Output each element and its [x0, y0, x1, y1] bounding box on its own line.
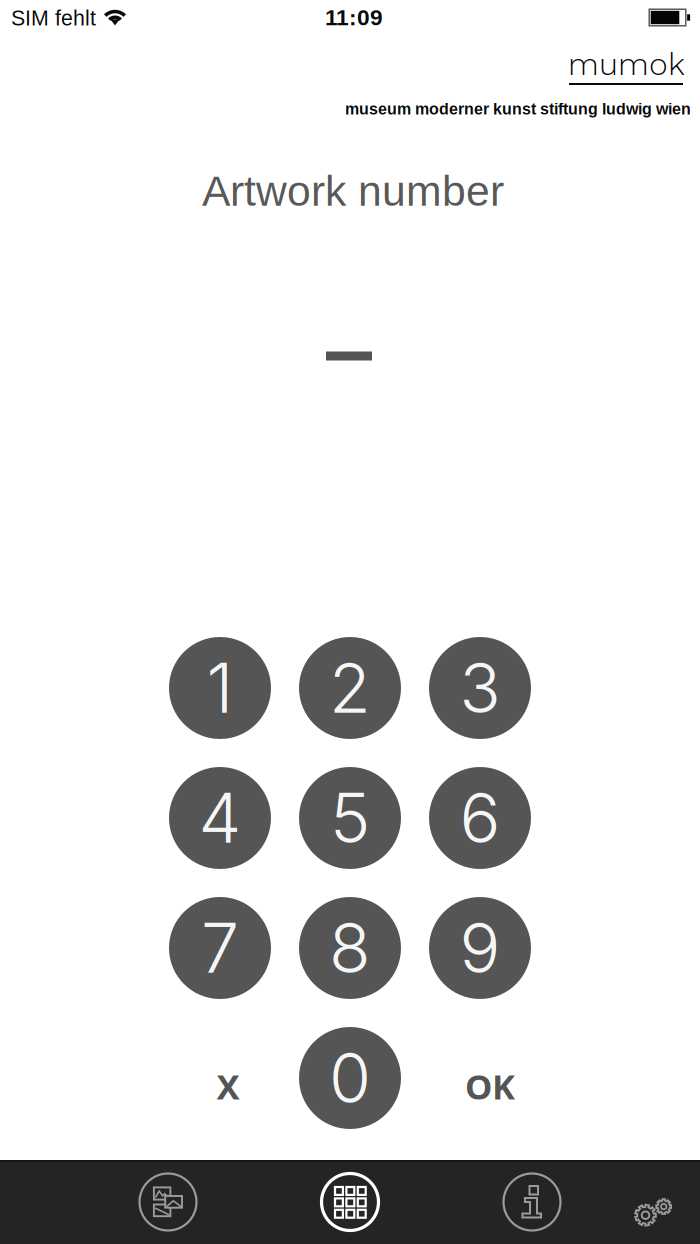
staticText: mumok: [568, 45, 685, 83]
staticText: 3: [459, 647, 500, 729]
staticText: 1: [206, 647, 233, 729]
button[interactable]: 4: [169, 767, 271, 869]
staticText: 0: [329, 1037, 371, 1119]
button[interactable]: 6: [429, 767, 531, 869]
staticText: museum moderner kunst stiftung ludwig wi…: [345, 100, 691, 118]
button[interactable]: 0: [299, 1027, 401, 1129]
button[interactable]: X: [177, 1035, 279, 1137]
button[interactable]: 3: [429, 637, 531, 739]
staticText: OK: [465, 1062, 515, 1110]
button[interactable]: Information: [472, 1160, 592, 1244]
staticText: X: [216, 1062, 239, 1110]
staticText: 2: [329, 647, 371, 729]
button[interactable]: 2: [299, 637, 401, 739]
staticText: 11:09: [325, 5, 383, 30]
staticText: Artwork number: [202, 167, 504, 215]
button[interactable]: Settings: [605, 1160, 700, 1244]
staticText: 8: [329, 907, 371, 989]
button[interactable]: 1: [169, 637, 271, 739]
button[interactable]: Gallery: [108, 1160, 228, 1244]
button[interactable]: Keypad: [290, 1160, 410, 1244]
staticText: 4: [198, 777, 241, 859]
button[interactable]: 7: [169, 897, 271, 999]
button[interactable]: 5: [299, 767, 401, 869]
staticText: 6: [459, 777, 500, 859]
staticText: 9: [459, 907, 500, 989]
staticText: 5: [330, 777, 370, 859]
button[interactable]: 9: [429, 897, 531, 999]
button[interactable]: OK: [439, 1035, 541, 1137]
staticText: SIM fehlt: [11, 6, 96, 30]
staticText: 7: [201, 907, 239, 989]
button[interactable]: 8: [299, 897, 401, 999]
